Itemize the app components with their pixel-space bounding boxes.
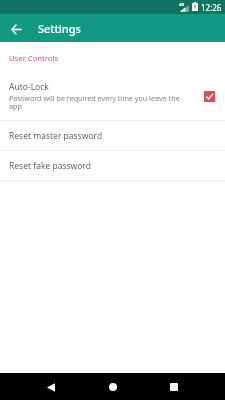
button[interactable]: Reset master password <box>0 121 225 150</box>
button[interactable]: Auto-Lock checkbox <box>204 91 215 102</box>
button[interactable]: Home <box>102 376 124 398</box>
staticText: Auto-Lock <box>9 81 49 93</box>
staticText: 12:26 <box>201 2 222 13</box>
staticText: User Controls <box>9 53 59 63</box>
staticText: Reset master password <box>9 130 103 142</box>
staticText: Settings <box>38 21 81 36</box>
button[interactable]: Back <box>40 376 62 398</box>
button[interactable]: Back <box>0 14 32 42</box>
button[interactable]: Recent apps <box>163 376 185 398</box>
staticText: Reset fake password <box>9 160 91 172</box>
staticText: Password will be required every time you… <box>9 93 183 111</box>
button[interactable]: Auto-Lock <box>0 81 225 111</box>
staticText: 4G <box>179 2 185 7</box>
button[interactable]: Reset fake password <box>0 151 225 180</box>
